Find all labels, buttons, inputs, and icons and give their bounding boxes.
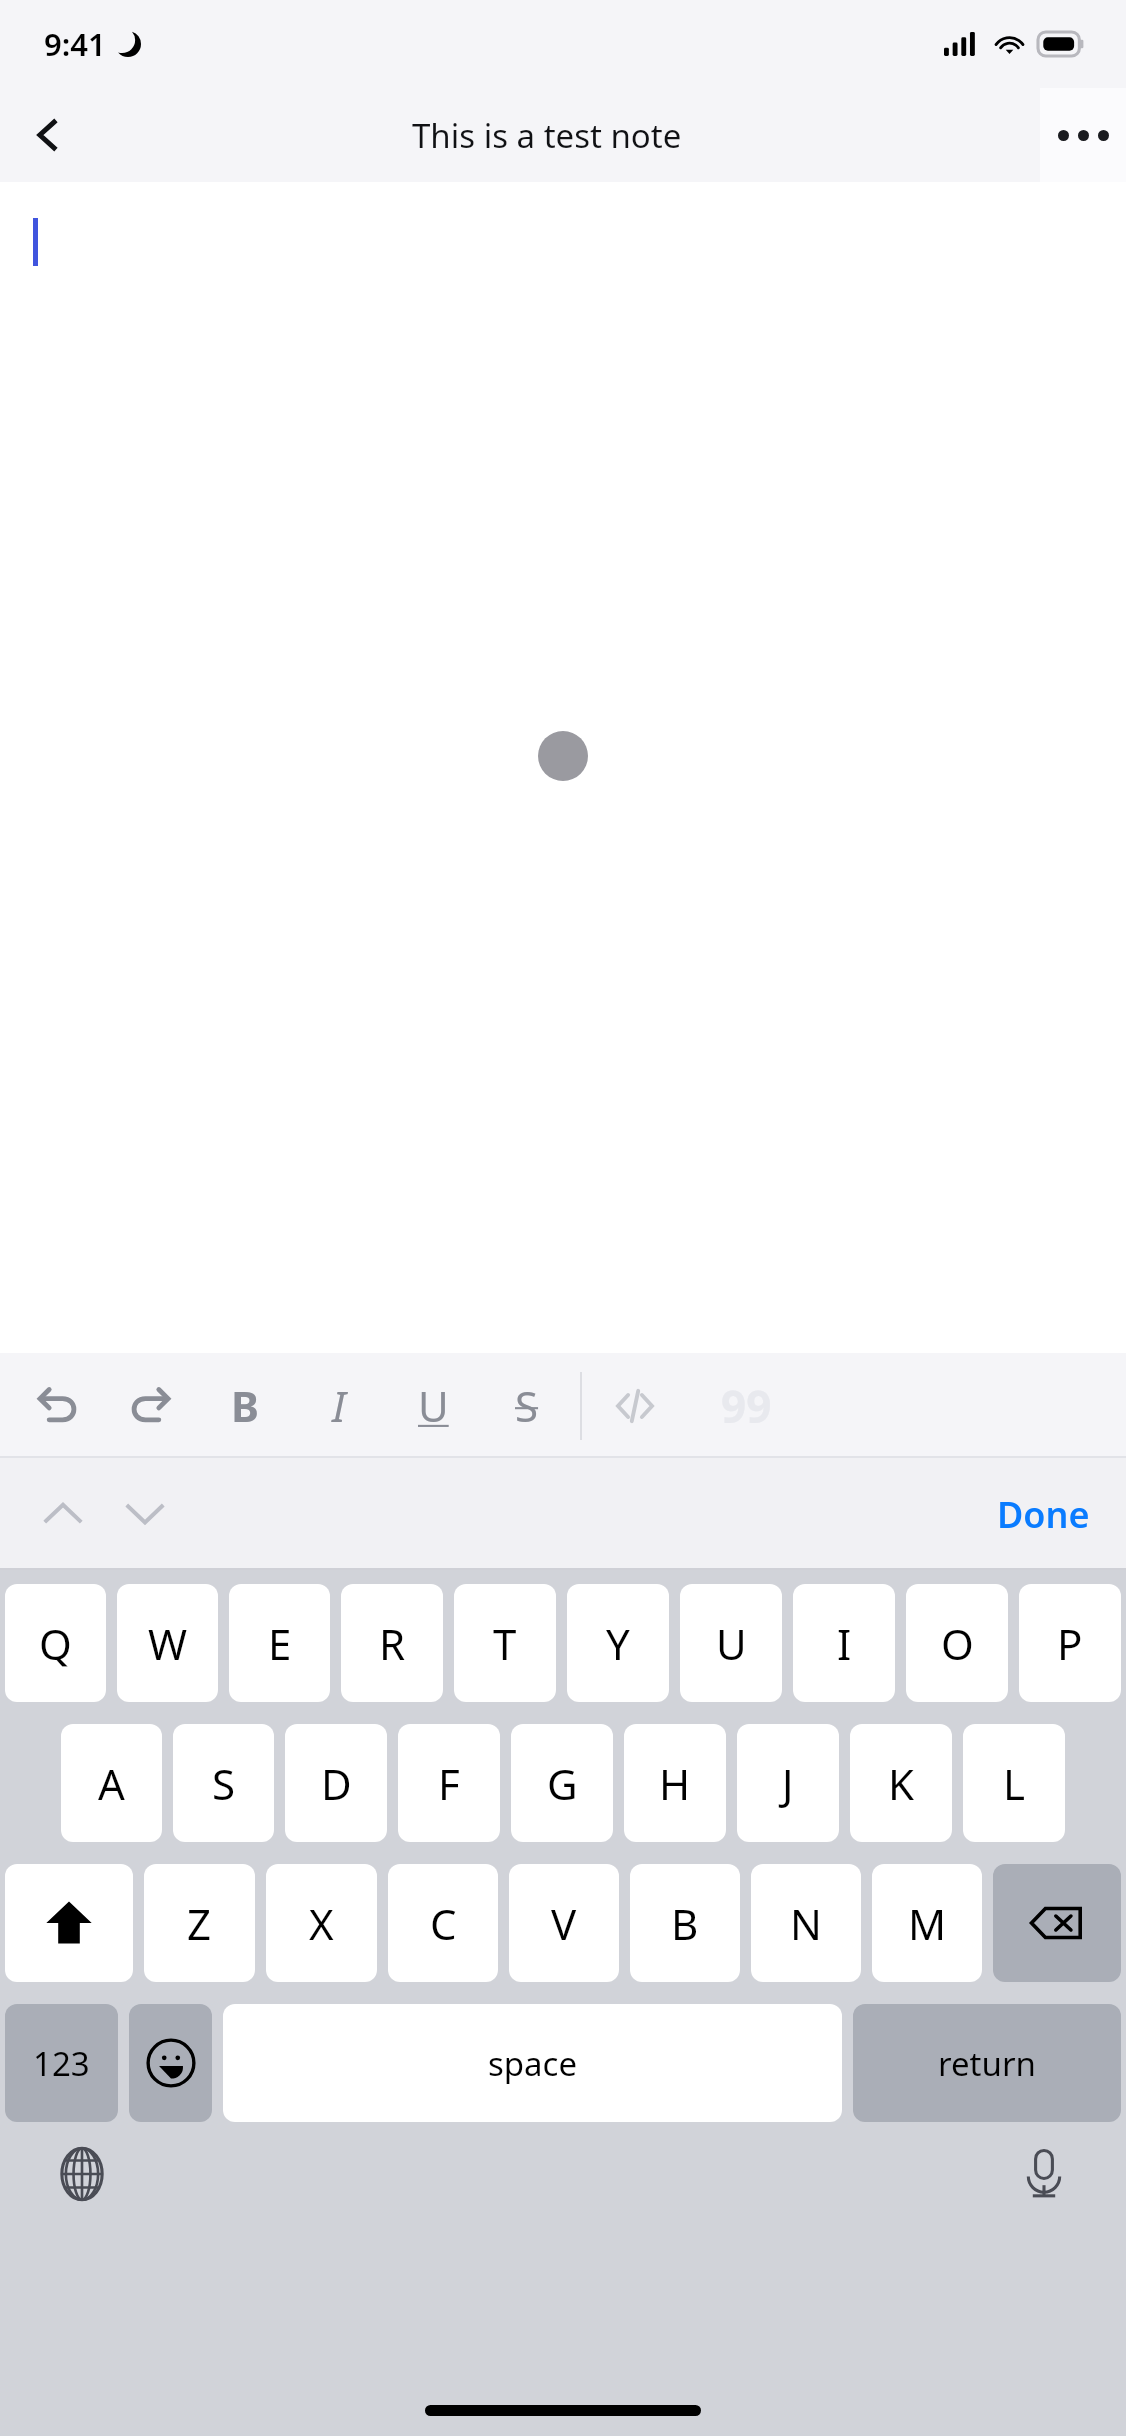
button[interactable]: B	[198, 1353, 292, 1458]
button[interactable]: G	[511, 1724, 613, 1842]
staticText: 9:41	[44, 23, 106, 65]
button[interactable]: Dictate	[1006, 2136, 1082, 2212]
button[interactable]: S	[173, 1724, 274, 1842]
button[interactable]: Q	[5, 1584, 106, 1702]
button[interactable]: Y	[567, 1584, 669, 1702]
button[interactable]: U	[680, 1584, 782, 1702]
button[interactable]: Shift	[5, 1864, 133, 1982]
button[interactable]: Back	[12, 99, 84, 171]
staticText: B	[671, 1895, 699, 1952]
button[interactable]: Done	[961, 1458, 1126, 1570]
staticText: P	[1057, 1615, 1083, 1672]
button[interactable]: More options	[1040, 88, 1126, 182]
button[interactable]: K	[850, 1724, 952, 1842]
staticText: Q	[39, 1615, 72, 1672]
staticText: F	[438, 1755, 460, 1812]
button[interactable]: O	[906, 1584, 1008, 1702]
staticText: M	[908, 1895, 947, 1952]
staticText: S	[515, 1377, 539, 1434]
staticText: D	[321, 1755, 352, 1812]
staticText: W	[148, 1615, 188, 1672]
button[interactable]: B	[630, 1864, 740, 1982]
button[interactable]: H	[624, 1724, 726, 1842]
staticText: J	[782, 1755, 794, 1812]
staticText: H	[659, 1755, 691, 1812]
button[interactable]: Next field	[104, 1473, 186, 1555]
staticText: return	[938, 2041, 1036, 2086]
button[interactable]: Z	[144, 1864, 255, 1982]
button[interactable]: V	[509, 1864, 619, 1982]
button[interactable]: R	[341, 1584, 443, 1702]
staticText: 99	[721, 1376, 772, 1436]
button[interactable]: Previous field	[22, 1473, 104, 1555]
staticText: E	[268, 1615, 292, 1672]
button[interactable]: Emoji	[129, 2004, 212, 2122]
staticText: L	[1003, 1755, 1026, 1812]
button[interactable]: D	[285, 1724, 387, 1842]
staticText: T	[493, 1615, 517, 1672]
staticText: Z	[187, 1895, 212, 1952]
staticText: S	[212, 1755, 236, 1812]
staticText: C	[430, 1895, 457, 1952]
button[interactable]: L	[963, 1724, 1065, 1842]
staticText: B	[231, 1377, 259, 1434]
button[interactable]: S	[480, 1353, 574, 1458]
staticText: V	[551, 1895, 577, 1952]
button[interactable]: Change keyboard	[44, 2136, 120, 2212]
staticText: Y	[606, 1615, 630, 1672]
staticText: A	[98, 1755, 125, 1812]
staticText: I	[332, 1377, 346, 1434]
button[interactable]: Undo	[10, 1353, 104, 1458]
staticText: I	[837, 1615, 852, 1672]
button[interactable]: space	[223, 2004, 842, 2122]
staticText: K	[888, 1755, 914, 1812]
staticText: R	[379, 1615, 406, 1672]
button[interactable]: Backspace	[993, 1864, 1121, 1982]
staticText: G	[547, 1755, 578, 1812]
staticText: U	[418, 1377, 449, 1434]
staticText: U	[716, 1615, 747, 1672]
button[interactable]: I	[292, 1353, 386, 1458]
button[interactable]: E	[229, 1584, 330, 1702]
button[interactable]: T	[454, 1584, 556, 1702]
button[interactable]: A	[61, 1724, 162, 1842]
button[interactable]: return	[853, 2004, 1121, 2122]
button[interactable]: 123	[5, 2004, 118, 2122]
staticText: O	[941, 1615, 974, 1672]
button[interactable]: I	[793, 1584, 895, 1702]
button[interactable]: P	[1019, 1584, 1121, 1702]
button[interactable]: Code block	[588, 1353, 682, 1458]
staticText: N	[790, 1895, 822, 1952]
button[interactable]: Quote	[682, 1353, 774, 1458]
button[interactable]	[0, 182, 1126, 1353]
staticText: This is a test note	[412, 113, 682, 158]
button[interactable]: F	[398, 1724, 500, 1842]
button[interactable]: W	[117, 1584, 218, 1702]
staticText: Done	[997, 1490, 1090, 1539]
staticText: 123	[33, 2041, 90, 2086]
button[interactable]: J	[737, 1724, 839, 1842]
button[interactable]: Redo	[104, 1353, 198, 1458]
staticText: X	[309, 1895, 334, 1952]
button[interactable]: U	[386, 1353, 480, 1458]
button[interactable]: M	[872, 1864, 982, 1982]
button[interactable]: C	[388, 1864, 498, 1982]
button[interactable]: X	[266, 1864, 377, 1982]
button[interactable]: N	[751, 1864, 861, 1982]
staticText: space	[488, 2041, 578, 2086]
